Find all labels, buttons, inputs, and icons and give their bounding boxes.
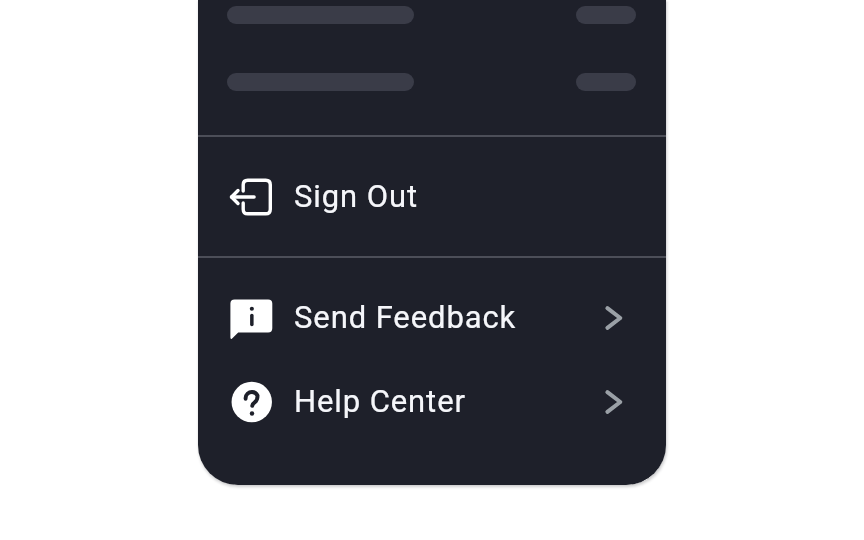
button[interactable]: Help center — [198, 360, 666, 444]
staticText: Help Center — [294, 383, 466, 419]
other: Help center — [228, 379, 274, 425]
button[interactable]: Send feedback — [198, 276, 666, 360]
staticText: Send Feedback — [294, 299, 517, 335]
other: Sign out — [228, 174, 274, 220]
button[interactable]: Sign out — [198, 136, 666, 257]
staticText: Sign Out — [294, 178, 418, 214]
other: Send feedback — [228, 295, 274, 341]
